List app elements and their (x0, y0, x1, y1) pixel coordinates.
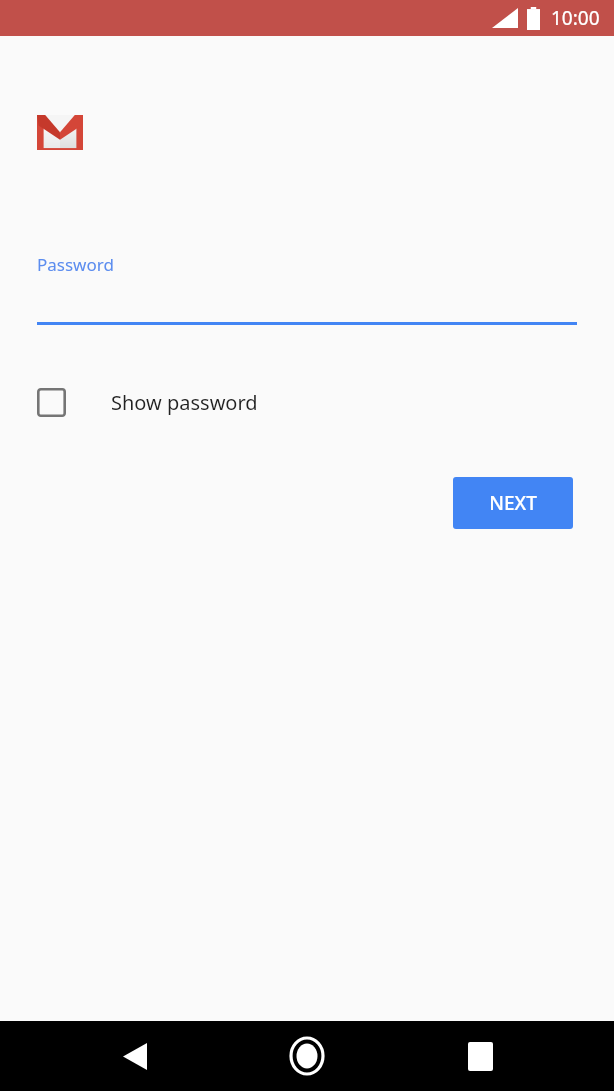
staticText: Show password (111, 389, 258, 416)
button[interactable]: Home (277, 1026, 337, 1086)
staticText: 10:00 (551, 5, 600, 31)
button[interactable]: Show password (37, 382, 258, 422)
staticText: Password (37, 253, 114, 276)
staticText: NEXT (489, 490, 537, 516)
button[interactable]: Recent apps (450, 1026, 510, 1086)
button[interactable]: NEXT (453, 477, 573, 529)
button[interactable]: Back (105, 1026, 165, 1086)
